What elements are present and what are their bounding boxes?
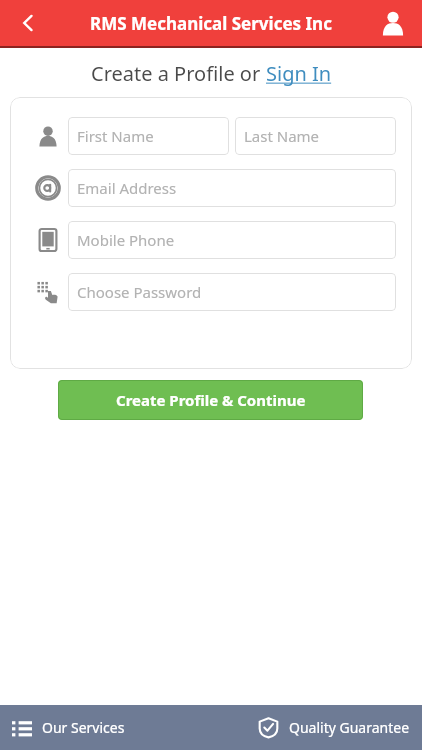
staticText: Last Name bbox=[244, 126, 320, 146]
button[interactable]: First Name bbox=[68, 117, 229, 155]
staticText: Choose Password bbox=[77, 282, 202, 302]
button[interactable]: Email Address bbox=[68, 169, 396, 207]
staticText: Email Address bbox=[77, 178, 177, 198]
button[interactable]: Choose Password bbox=[68, 273, 396, 311]
button[interactable]: Back bbox=[6, 1, 50, 45]
staticText: Our Services bbox=[42, 718, 125, 737]
button[interactable]: Account bbox=[372, 2, 414, 44]
staticText: First Name bbox=[77, 126, 154, 146]
staticText: Create Profile & Continue bbox=[116, 390, 306, 410]
button[interactable]: Last Name bbox=[235, 117, 396, 155]
staticText: Create a Profile or bbox=[91, 60, 266, 87]
button[interactable]: Create Profile & Continue bbox=[58, 380, 363, 420]
button[interactable]: Our Services bbox=[0, 705, 211, 750]
staticText: Mobile Phone bbox=[77, 230, 175, 250]
staticText: Quality Guarantee bbox=[289, 718, 410, 737]
button[interactable]: Sign In bbox=[266, 60, 332, 87]
button[interactable]: Mobile Phone bbox=[68, 221, 396, 259]
staticText: Sign In bbox=[266, 60, 332, 87]
button[interactable]: Quality Guarantee bbox=[211, 705, 422, 750]
staticText: RMS Mechanical Services Inc bbox=[90, 12, 332, 35]
